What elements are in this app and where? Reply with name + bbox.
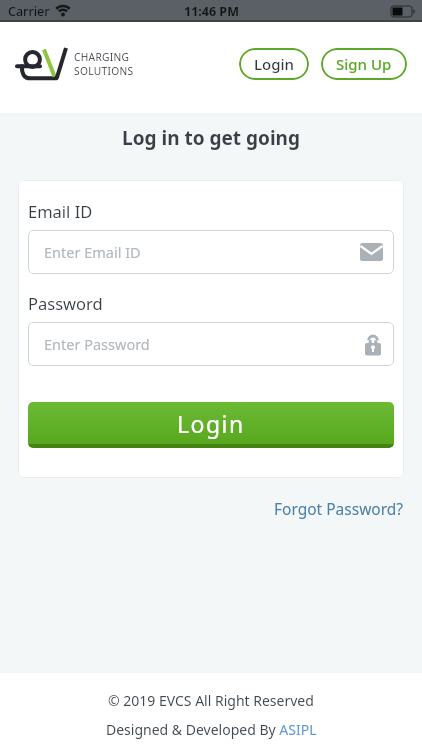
staticText: SOLUTIONS <box>74 64 134 78</box>
button[interactable]: Enter Email ID <box>28 230 394 274</box>
staticText: Designed & Developed By ASIPL <box>106 720 317 739</box>
button[interactable]: Designed & Developed By ASIPL <box>106 720 317 739</box>
staticText: Email ID <box>28 200 93 222</box>
staticText: Password <box>28 292 103 314</box>
staticText: Log in to get going <box>0 125 422 151</box>
staticText: Enter Password <box>44 334 150 354</box>
staticText: CHARGING <box>74 50 130 64</box>
staticText: 11:46 PM <box>184 3 239 20</box>
button[interactable]: Forgot Password? <box>274 498 404 519</box>
staticText: Enter Email ID <box>44 242 141 262</box>
staticText: Sign Up <box>336 54 392 74</box>
button[interactable]: Enter Password <box>28 322 394 366</box>
button[interactable]: Sign Up <box>321 48 407 80</box>
button[interactable]: Login <box>28 402 394 448</box>
button[interactable]: Login <box>239 48 309 80</box>
staticText: Forgot Password? <box>274 498 404 519</box>
staticText: Login <box>254 54 294 74</box>
staticText: © 2019 EVCS All Right Reserved <box>108 691 314 710</box>
staticText: Carrier <box>8 3 50 20</box>
staticText: Login <box>177 408 245 439</box>
